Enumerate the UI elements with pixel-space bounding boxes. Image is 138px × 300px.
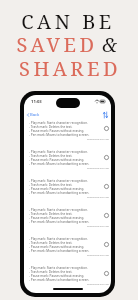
- staticText: - Pen mark: Moves to handwriting screen.: [29, 191, 90, 195]
- staticText: - Pen mark: Moves to handwriting screen.: [29, 249, 90, 253]
- staticText: 2024/02/28 22:17:05: [87, 167, 109, 170]
- staticText: - Trash mark: Deletes the text.: [29, 125, 73, 129]
- staticText: - Pause mark: Pauses without erasing.: [29, 158, 85, 162]
- button[interactable]: Play: [104, 242, 109, 247]
- staticText: - Play mark: Starts character recognitio…: [29, 266, 88, 270]
- button[interactable]: Play: [104, 213, 109, 218]
- staticText: Back: [30, 112, 40, 118]
- staticText: 2024/02/28 22:17:05: [87, 196, 109, 199]
- button[interactable]: Back: [24, 110, 45, 120]
- staticText: - Pause mark: Pauses without erasing.: [29, 129, 85, 133]
- staticText: - Trash mark: Deletes the text.: [29, 241, 73, 245]
- button[interactable]: - Play mark: Starts character recognitio…: [24, 149, 111, 178]
- staticText: - Play mark: Starts character recognitio…: [29, 121, 88, 125]
- staticText: - Trash mark: Deletes the text.: [29, 212, 73, 216]
- staticText: CAN BE: [21, 8, 115, 35]
- button[interactable]: - Play mark: Starts character recognitio…: [24, 265, 111, 293]
- staticText: - Pause mark: Pauses without erasing.: [29, 216, 85, 220]
- staticText: 11:03: [31, 99, 42, 105]
- staticText: 2024/02/28 22:17:05: [87, 254, 109, 257]
- button[interactable]: Play: [104, 126, 109, 131]
- button[interactable]: Play: [104, 271, 109, 276]
- staticText: 2024/02/28 22:17:05: [87, 225, 109, 228]
- staticText: - Pause mark: Pauses without erasing.: [29, 274, 85, 278]
- staticText: - Trash mark: Deletes the text.: [29, 270, 73, 274]
- button[interactable]: Sort: [99, 110, 111, 120]
- staticText: - Play mark: Starts character recognitio…: [29, 208, 88, 212]
- staticText: - Pen mark: Moves to handwriting screen.: [29, 133, 90, 137]
- staticText: - Play mark: Starts character recognitio…: [29, 237, 88, 241]
- staticText: SAVED: [12, 31, 102, 58]
- button[interactable]: - Play mark: Starts character recognitio…: [24, 236, 111, 265]
- staticText: - Trash mark: Deletes the text.: [29, 154, 73, 158]
- staticText: 2024/02/28 22:17:05: [87, 283, 109, 286]
- staticText: 2024/02/28 22:17:05: [87, 138, 109, 141]
- staticText: - Pen mark: Moves to handwriting screen.: [29, 220, 90, 224]
- staticText: - Pause mark: Pauses without erasing.: [29, 245, 85, 249]
- staticText: - Play mark: Starts character recognitio…: [29, 150, 88, 154]
- button[interactable]: - Play mark: Starts character recognitio…: [24, 178, 111, 207]
- staticText: - Pen mark: Moves to handwriting screen.: [29, 278, 90, 282]
- staticText: - Pause mark: Pauses without erasing.: [29, 187, 85, 191]
- staticText: - Trash mark: Deletes the text.: [29, 183, 73, 187]
- staticText: &: [102, 31, 117, 58]
- button[interactable]: - Play mark: Starts character recognitio…: [24, 207, 111, 236]
- staticText: - Play mark: Starts character recognitio…: [29, 179, 88, 183]
- staticText: - Pen mark: Moves to handwriting screen.: [29, 162, 90, 166]
- staticText: SHARED: [19, 55, 121, 82]
- button[interactable]: Play: [104, 155, 109, 160]
- button[interactable]: Play: [104, 184, 109, 189]
- button[interactable]: - Play mark: Starts character recognitio…: [24, 120, 111, 149]
